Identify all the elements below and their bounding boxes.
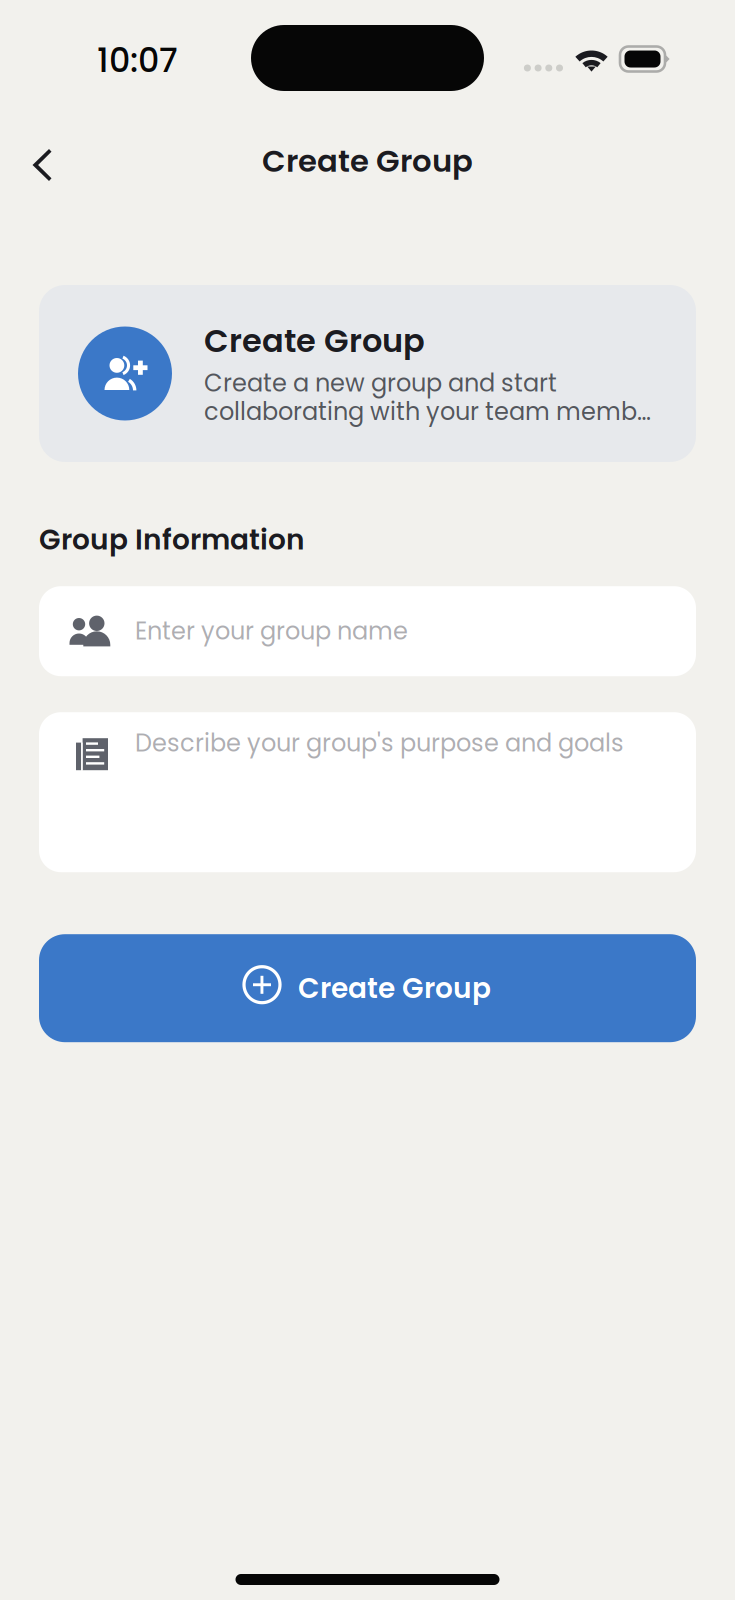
button[interactable]: Enter your group name bbox=[39, 586, 696, 676]
staticText: Create a new group and start bbox=[204, 366, 557, 400]
staticText: Create Group bbox=[204, 318, 425, 363]
staticText: 10:07 bbox=[97, 37, 178, 84]
staticText: Group Information bbox=[39, 520, 305, 559]
button[interactable]: Back bbox=[0, 116, 84, 200]
staticText: Describe your group's purpose and goals bbox=[135, 726, 624, 760]
button[interactable]: Describe your group's purpose and goals bbox=[39, 712, 696, 872]
staticText: Create Group bbox=[262, 139, 473, 182]
staticText: collaborating with your team memb… bbox=[204, 395, 651, 428]
staticText: Enter your group name bbox=[135, 614, 408, 648]
button[interactable]: Create Group bbox=[39, 934, 696, 1042]
staticText: Create Group bbox=[298, 969, 491, 1008]
